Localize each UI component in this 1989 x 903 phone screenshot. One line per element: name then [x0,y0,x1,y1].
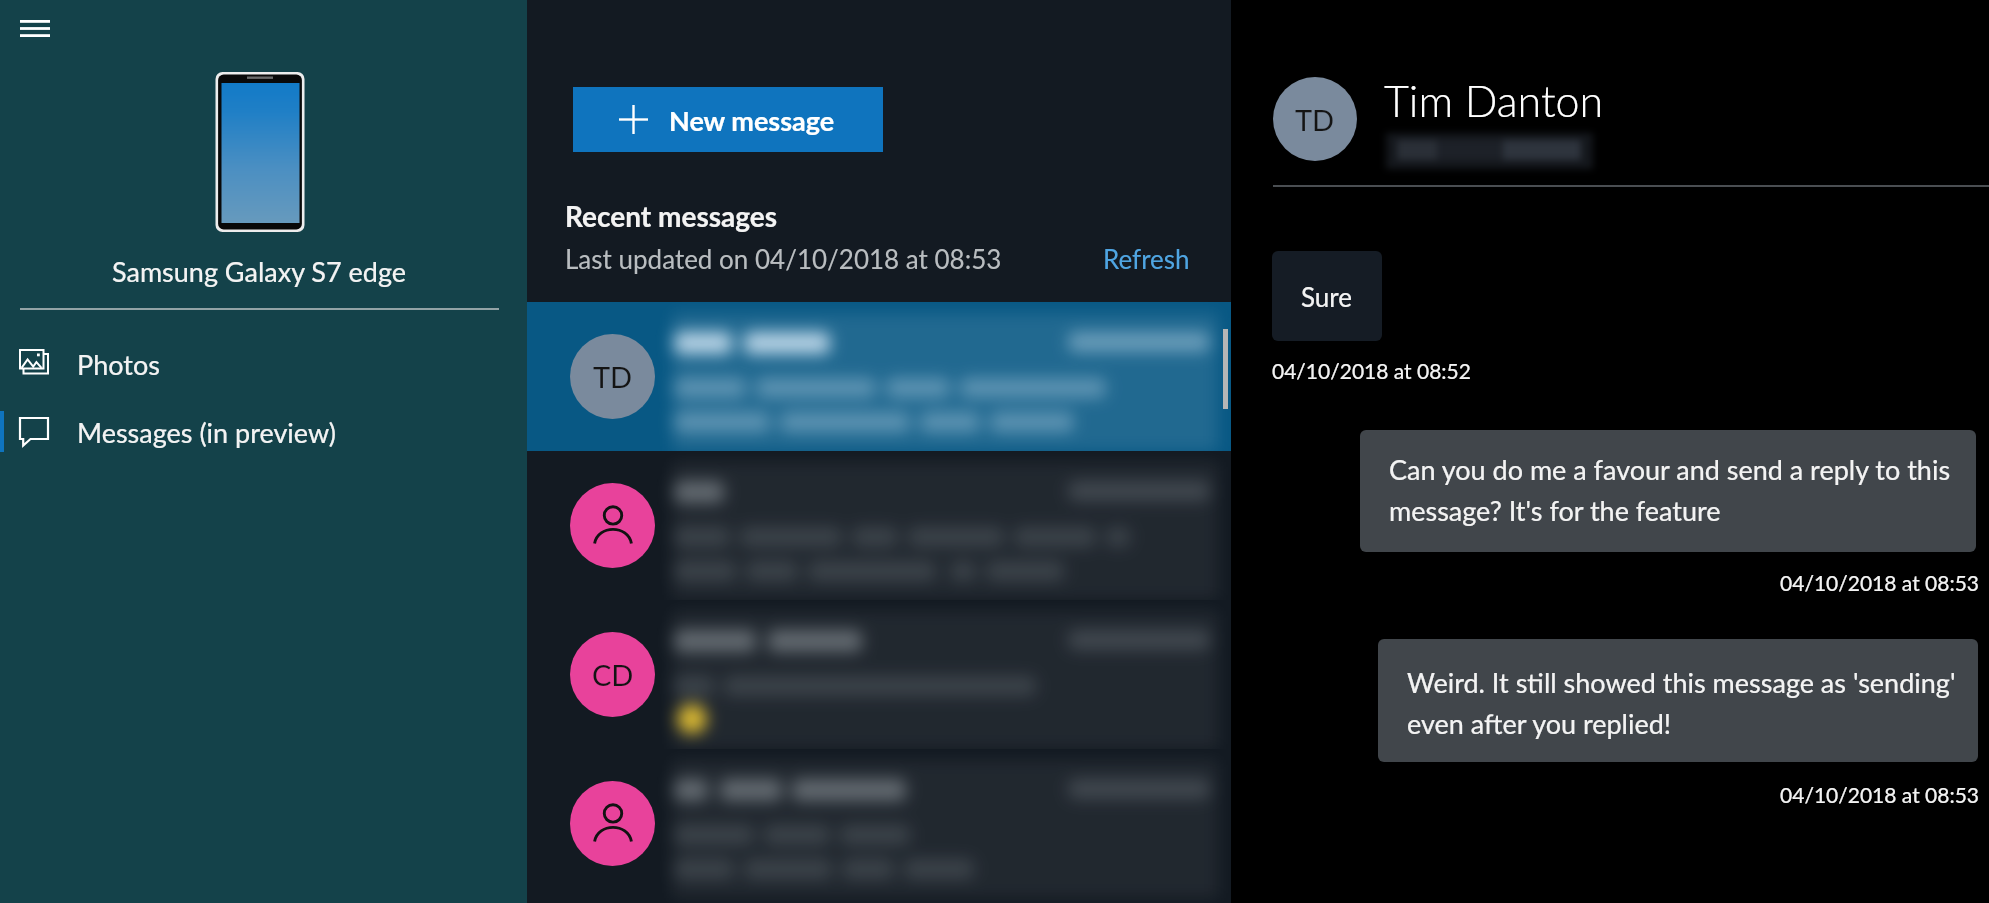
staticText: Refresh [1103,243,1190,274]
staticText: Can you do me a favour and send a reply … [1389,453,1962,526]
button[interactable]: CD [527,600,1231,749]
button[interactable]: New message [573,87,883,152]
staticText: Last updated on 04/10/2018 at 08:53 [565,243,1002,274]
staticText: Photos [77,348,160,380]
button[interactable]: Photos [0,328,527,399]
staticText: TD [593,359,633,394]
staticText: Recent messages [565,199,778,233]
staticText: CD [592,657,634,692]
staticText: 04/10/2018 at 08:53 [1231,570,1979,595]
staticText: 04/10/2018 at 08:52 [1272,358,1471,383]
button[interactable]: Menu [5,2,65,54]
button[interactable] [527,451,1231,600]
button[interactable]: TD [527,302,1231,451]
staticText: TD [1295,102,1335,137]
button[interactable]: Messages (in preview) [0,396,527,467]
button[interactable] [1261,66,1691,176]
button[interactable]: Refresh [1103,243,1190,274]
staticText: Weird. It still showed this message as '… [1407,666,1964,739]
staticText: 04/10/2018 at 08:53 [1231,782,1979,807]
button[interactable] [527,749,1231,898]
staticText: Tim Danton [1384,75,1604,127]
staticText: Samsung Galaxy S7 edge [112,255,406,287]
staticText: New message [669,104,835,136]
staticText: Sure [1301,281,1352,312]
staticText: Messages (in preview) [77,416,336,448]
